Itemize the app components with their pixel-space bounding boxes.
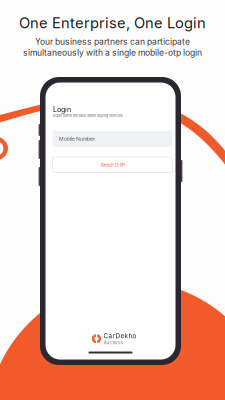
staticText: Login [53, 105, 71, 114]
staticText: Mobile Number [59, 136, 95, 142]
staticText: Send OTP [100, 161, 124, 168]
staticText: CarDekho [104, 332, 137, 340]
button[interactable]: Send OTP [52, 157, 172, 172]
staticText: Your business partners can participate [35, 36, 190, 47]
staticText: simultaneously with a single mobile-otp … [23, 47, 202, 58]
staticText: Experience the best when buying vehicles [53, 113, 123, 118]
staticText: One Enterprise, One Login [19, 14, 206, 32]
staticText: Auctions [104, 340, 123, 345]
